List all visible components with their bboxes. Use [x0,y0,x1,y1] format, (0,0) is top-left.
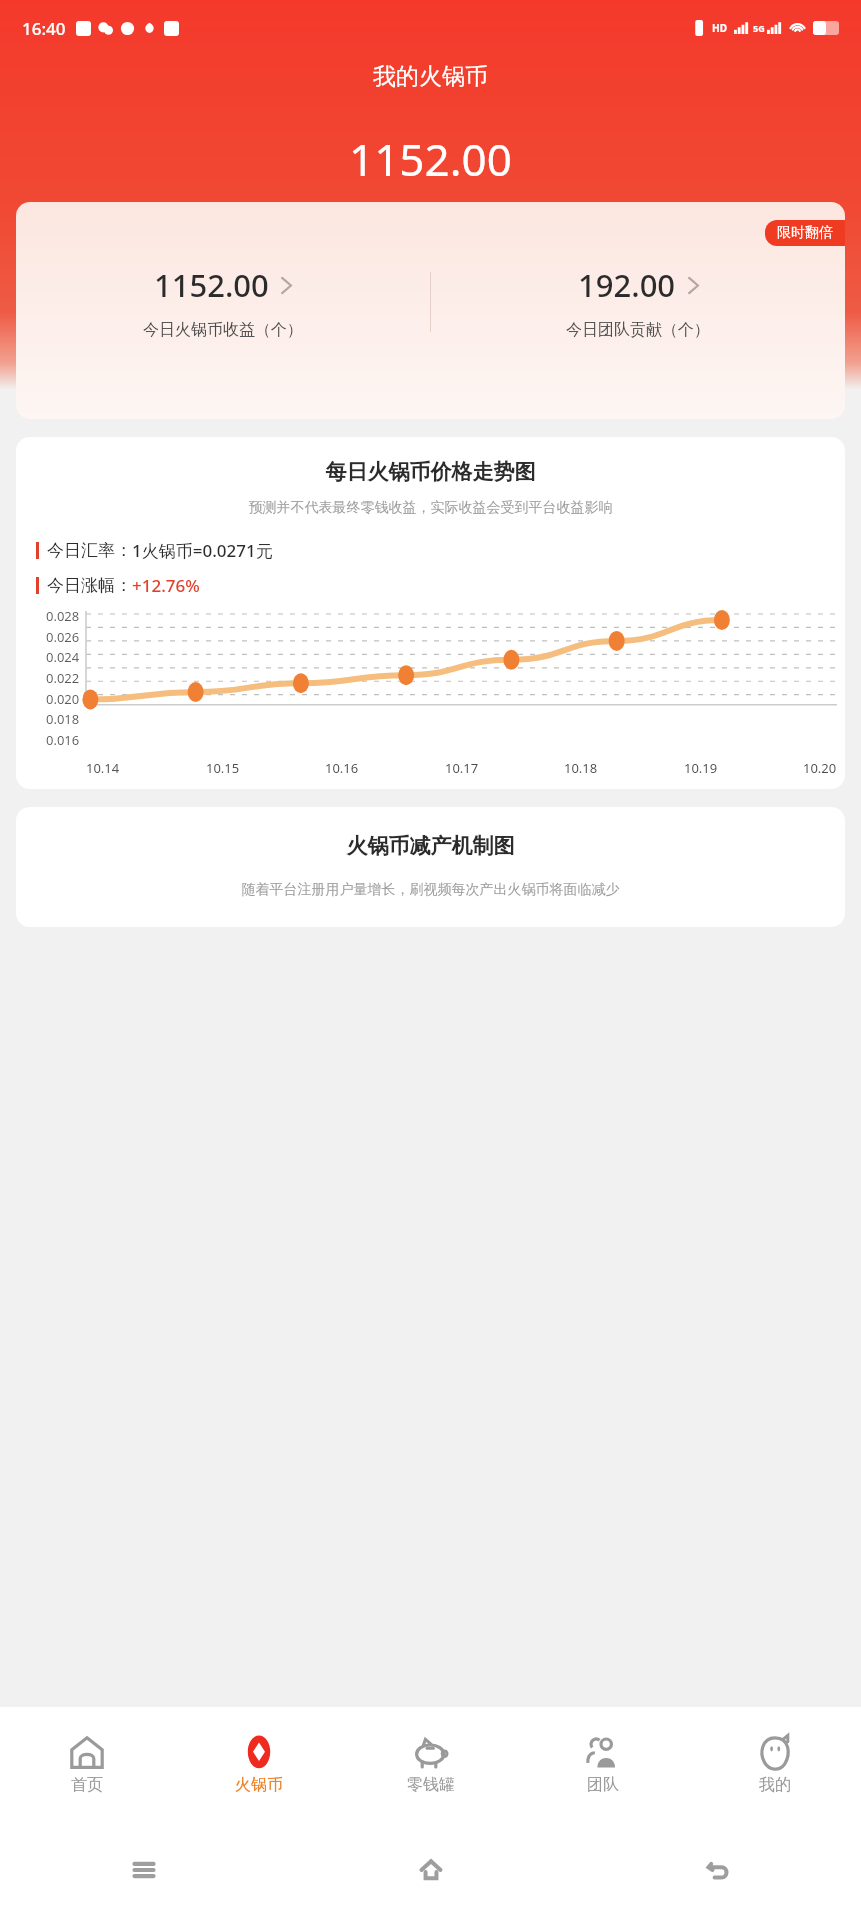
staticText: 10.16 [325,759,359,777]
staticText: 1火锅币=0.0271元 [132,539,273,562]
staticText: 10.14 [86,759,120,777]
button[interactable]: 团队 [517,1725,689,1803]
staticText: 0.020 [46,690,80,708]
staticText: 今日涨幅： [47,575,132,596]
button[interactable]: 我的 [689,1725,861,1803]
staticText: 1152.00 [154,264,269,306]
button[interactable]: Back [574,1820,861,1920]
staticText: 今日火锅币收益（个） [143,320,303,340]
staticText: 10.18 [564,759,598,777]
staticText: 我的 [759,1775,791,1795]
staticText: 预测并不代表最终零钱收益，实际收益会受到平台收益影响 [16,499,845,517]
staticText: 16:40 [22,17,66,40]
staticText: 完成刷视频任务赚取火锅币奖励，每人最高可领取12次 [255,274,606,294]
staticText: 10.19 [684,759,718,777]
staticText: 1152.00 [349,129,512,189]
button[interactable]: 限时翻倍 [765,220,845,246]
button[interactable]: Home [287,1820,574,1920]
staticText: 0.026 [46,628,80,646]
button[interactable]: 零钱罐 [345,1725,517,1803]
staticText: 192.00 [578,264,676,306]
staticText: 零钱罐 [407,1775,455,1795]
staticText: 5G [753,22,765,34]
button[interactable]: Recent apps [0,1820,287,1920]
staticText: 0.024 [46,648,80,666]
staticText: 10.15 [206,759,240,777]
staticText: 0.016 [46,731,80,749]
button[interactable]: 192.00 [431,264,845,340]
staticText: 火锅币减产机制图 [16,833,845,859]
staticText: 0.028 [46,607,80,625]
button[interactable]: 火锅币 [173,1725,345,1803]
staticText: 火锅币 [235,1775,283,1795]
staticText: 0.018 [46,710,80,728]
staticText: 今日团队贡献（个） [566,320,710,340]
staticText: 限时翻倍 [777,224,833,242]
staticText: 我的火锅币 [373,62,488,91]
staticText: 10.17 [445,759,479,777]
staticText: HD [712,21,727,35]
staticText: 随着平台注册用户量增长，刷视频每次产出火锅币将面临减少 [16,881,845,899]
button[interactable]: 首页 [0,1725,173,1803]
staticText: 0.022 [46,669,80,687]
staticText: 今日汇率： [47,540,132,561]
staticText: 团队 [587,1775,619,1795]
staticText: +12.76% [132,574,200,597]
staticText: 首页 [71,1775,103,1795]
staticText: 10.20 [803,759,837,777]
staticText: 每日火锅币价格走势图 [16,459,845,485]
button[interactable]: 1152.00 [16,264,430,340]
